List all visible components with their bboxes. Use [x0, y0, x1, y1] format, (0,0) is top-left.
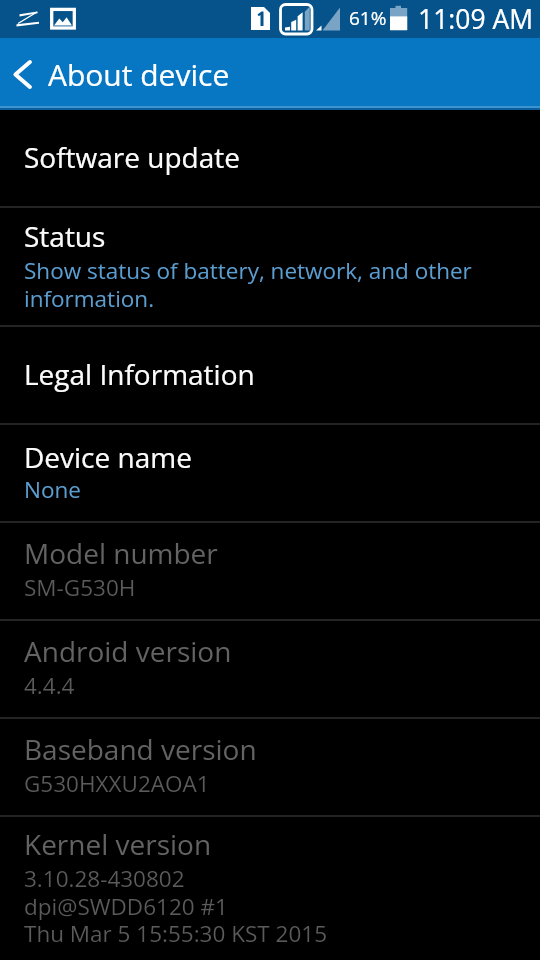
staticText: SM-G530H: [24, 572, 136, 603]
staticText: Show status of battery, network, and oth…: [24, 255, 524, 313]
staticText: Status: [24, 217, 106, 255]
staticText: 3.10.28-430802 dpi@SWDD6120 #1 Thu Mar 5…: [24, 863, 327, 948]
staticText: Baseband version: [24, 730, 257, 768]
button[interactable]: Legal Information: [0, 327, 540, 423]
staticText: 11:09 AM: [418, 1, 534, 37]
staticText: 4.4.4: [24, 670, 75, 701]
button[interactable]: Navigate up to Settings: [0, 38, 540, 110]
button[interactable]: Device name: [0, 425, 540, 521]
staticText: About device: [48, 54, 230, 95]
button[interactable]: Model number: [0, 523, 540, 619]
staticText: Android version: [24, 632, 232, 670]
staticText: Legal Information: [24, 355, 255, 393]
button[interactable]: Software update: [0, 110, 540, 206]
button[interactable]: Kernel version: [0, 817, 540, 960]
button[interactable]: Android version: [0, 621, 540, 717]
staticText: Software update: [24, 138, 240, 176]
staticText: Device name: [24, 438, 192, 476]
staticText: 61%: [349, 5, 387, 31]
button[interactable]: Baseband version: [0, 719, 540, 815]
staticText: Model number: [24, 534, 218, 572]
staticText: G530HXXU2AOA1: [24, 768, 210, 799]
button[interactable]: Status: [0, 208, 540, 325]
staticText: Kernel version: [24, 825, 212, 863]
staticText: None: [24, 474, 81, 505]
